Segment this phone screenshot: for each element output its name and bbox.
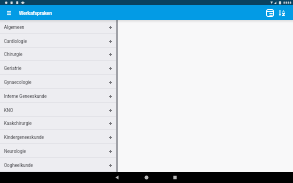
button[interactable]: Chirurgie (0, 48, 116, 61)
button[interactable]: Gynaecologie (0, 75, 116, 89)
staticText: Chirurgie (4, 52, 109, 57)
button[interactable]: KNO (0, 103, 116, 117)
button[interactable]: Toggle list view (264, 7, 276, 19)
staticText: Werkafspraken (19, 10, 52, 16)
button[interactable]: Oogheelkunde (0, 158, 116, 172)
staticText: KNO (4, 108, 109, 113)
button[interactable]: Open navigation drawer (4, 8, 13, 17)
staticText: Kaakchirurgie (4, 121, 109, 126)
button[interactable]: Neurologie (0, 144, 116, 158)
button[interactable]: Kindergeneeskunde (0, 130, 116, 144)
staticText: Kindergeneeskunde (4, 135, 109, 140)
staticText: Gynaecologie (4, 80, 109, 85)
staticText: Interne Geneeskunde (4, 94, 109, 99)
button[interactable]: Sort alphabetically (276, 7, 287, 18)
staticText: Geriatrie (4, 66, 109, 71)
button[interactable]: Cardiologie (0, 34, 116, 48)
button[interactable]: Geriatrie (0, 61, 116, 75)
staticText: Cardiologie (4, 39, 109, 44)
staticText: Oogheelkunde (4, 163, 109, 168)
button[interactable]: Kaakchirurgie (0, 117, 116, 130)
button[interactable]: Interne Geneeskunde (0, 89, 116, 103)
button[interactable]: Algemeen (0, 20, 116, 34)
staticText: Neurologie (4, 149, 109, 154)
staticText: Algemeen (4, 25, 109, 30)
